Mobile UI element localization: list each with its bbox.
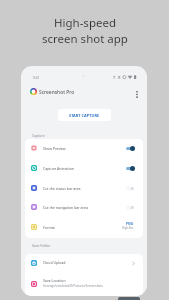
button[interactable]: START CAPTURE xyxy=(58,109,111,121)
staticText: Format xyxy=(43,225,55,230)
button[interactable]: On xyxy=(126,146,134,151)
staticText: Capture xyxy=(32,133,45,137)
button[interactable]: Save Location xyxy=(25,274,143,296)
staticText: PNG xyxy=(126,221,134,225)
staticText: Cut the navigation bar area xyxy=(43,205,88,210)
button[interactable]: Format xyxy=(25,218,143,238)
staticText: Cloud Upload xyxy=(43,260,66,265)
button[interactable]: More options xyxy=(131,88,143,100)
button[interactable]: Cut the navigation bar area xyxy=(25,198,143,218)
staticText: screen shot app xyxy=(42,31,128,47)
staticText: Capture Animation xyxy=(43,166,74,171)
button[interactable]: Show Preview xyxy=(25,139,143,159)
staticText: START CAPTURE xyxy=(69,113,100,118)
staticText: Screenshot Pro xyxy=(39,89,75,96)
staticText: High-speed xyxy=(54,15,116,31)
staticText: Show Preview xyxy=(43,146,66,151)
staticText: 9:41 xyxy=(33,76,40,80)
staticText: /storage/emulated/0/Pictures/Screenshots xyxy=(43,284,103,288)
button[interactable]: Cut the status bar area xyxy=(25,179,143,199)
staticText: Save Location xyxy=(43,278,66,283)
staticText: High-Res xyxy=(122,226,134,230)
button[interactable]: Cloud Upload xyxy=(25,254,143,274)
button[interactable]: On xyxy=(126,166,134,171)
staticText: Cut the status bar area xyxy=(43,186,81,191)
staticText: Save Folder xyxy=(32,243,51,247)
button[interactable]: Capture Animation xyxy=(25,159,143,179)
button[interactable]: Off xyxy=(126,205,134,210)
button[interactable]: Off xyxy=(126,186,134,191)
